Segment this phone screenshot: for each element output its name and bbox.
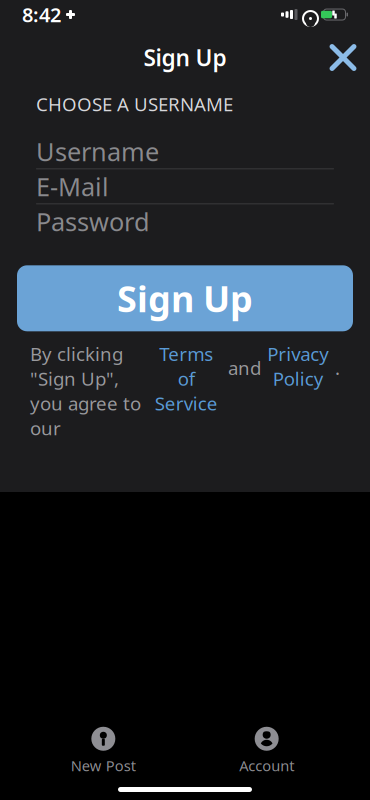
button[interactable]: Terms of Service bbox=[150, 341, 222, 416]
button[interactable]: Account bbox=[207, 725, 327, 777]
button[interactable]: Close bbox=[316, 31, 370, 83]
staticText: and bbox=[228, 355, 261, 380]
staticText: Account bbox=[239, 756, 294, 775]
staticText: CHOOSE A USERNAME bbox=[36, 91, 233, 116]
staticText: Terms of Service bbox=[154, 341, 217, 416]
staticText: Sign Up bbox=[117, 274, 253, 322]
button[interactable]: Privacy Policy bbox=[267, 341, 329, 391]
staticText: Password bbox=[36, 204, 150, 238]
staticText: Sign Up bbox=[143, 42, 226, 73]
staticText: New Post bbox=[71, 756, 136, 775]
staticText: 8:42 bbox=[22, 1, 61, 28]
button[interactable]: Sign Up bbox=[17, 265, 353, 331]
staticText: Username bbox=[36, 134, 159, 168]
staticText: By clicking "Sign Up", you agree to our bbox=[30, 341, 141, 440]
staticText: Privacy Policy bbox=[267, 341, 329, 391]
staticText: . bbox=[335, 355, 340, 380]
button[interactable]: New Post bbox=[43, 725, 163, 777]
staticText: E-Mail bbox=[36, 169, 109, 203]
